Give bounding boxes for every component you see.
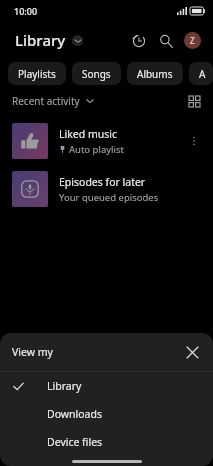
staticText: Episodes for later: [59, 175, 146, 189]
staticText: Z: [190, 35, 195, 46]
button[interactable]: Albums: [127, 62, 183, 85]
staticText: Library: [15, 30, 66, 50]
staticText: Playlists: [18, 67, 56, 81]
button[interactable]: Artists: [189, 62, 213, 85]
button[interactable]: Library: [13, 26, 85, 54]
button[interactable]: Episodes for later: [0, 165, 213, 213]
button[interactable]: Liked music: [0, 117, 213, 165]
button[interactable]: Search: [152, 27, 179, 54]
staticText: Recent activity: [12, 94, 80, 108]
button[interactable]: Downloads: [0, 400, 213, 428]
staticText: Artists: [199, 67, 203, 81]
button[interactable]: Playlists: [8, 62, 66, 85]
button[interactable]: Account: [179, 27, 206, 54]
staticText: Your queued episodes: [59, 191, 159, 204]
button[interactable]: Songs: [72, 62, 121, 85]
staticText: Albums: [137, 67, 173, 81]
staticText: Downloads: [47, 407, 102, 421]
button[interactable]: Grid view: [184, 91, 204, 111]
button[interactable]: Library: [0, 372, 213, 400]
staticText: Device files: [47, 435, 103, 449]
staticText: Songs: [82, 67, 111, 81]
staticText: Auto playlist: [69, 143, 124, 156]
button[interactable]: History: [125, 27, 152, 54]
button[interactable]: Device files: [0, 428, 213, 456]
button[interactable]: Close: [179, 339, 205, 365]
staticText: View my: [12, 345, 53, 359]
staticText: Library: [47, 379, 82, 393]
button[interactable]: More options: [181, 128, 207, 154]
button[interactable]: Recent activity: [12, 91, 94, 111]
staticText: 10:00: [14, 5, 38, 17]
staticText: Liked music: [59, 127, 118, 141]
